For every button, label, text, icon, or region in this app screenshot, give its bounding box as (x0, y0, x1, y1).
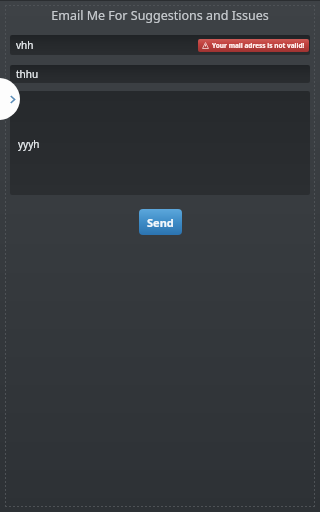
button[interactable]: vhh (10, 35, 310, 55)
button[interactable]: Send (139, 209, 182, 235)
staticText: Send (147, 215, 174, 230)
staticText: Your mail adress is not valid! (212, 41, 305, 50)
button[interactable]: yyyh (10, 91, 310, 195)
staticText: thhu (16, 67, 39, 81)
staticText: Email Me For Suggestions and Issues (0, 7, 320, 24)
button[interactable]: Open menu (0, 78, 20, 120)
staticText: yyyh (18, 137, 40, 151)
staticText: vhh (16, 38, 34, 52)
button[interactable]: thhu (10, 65, 310, 83)
